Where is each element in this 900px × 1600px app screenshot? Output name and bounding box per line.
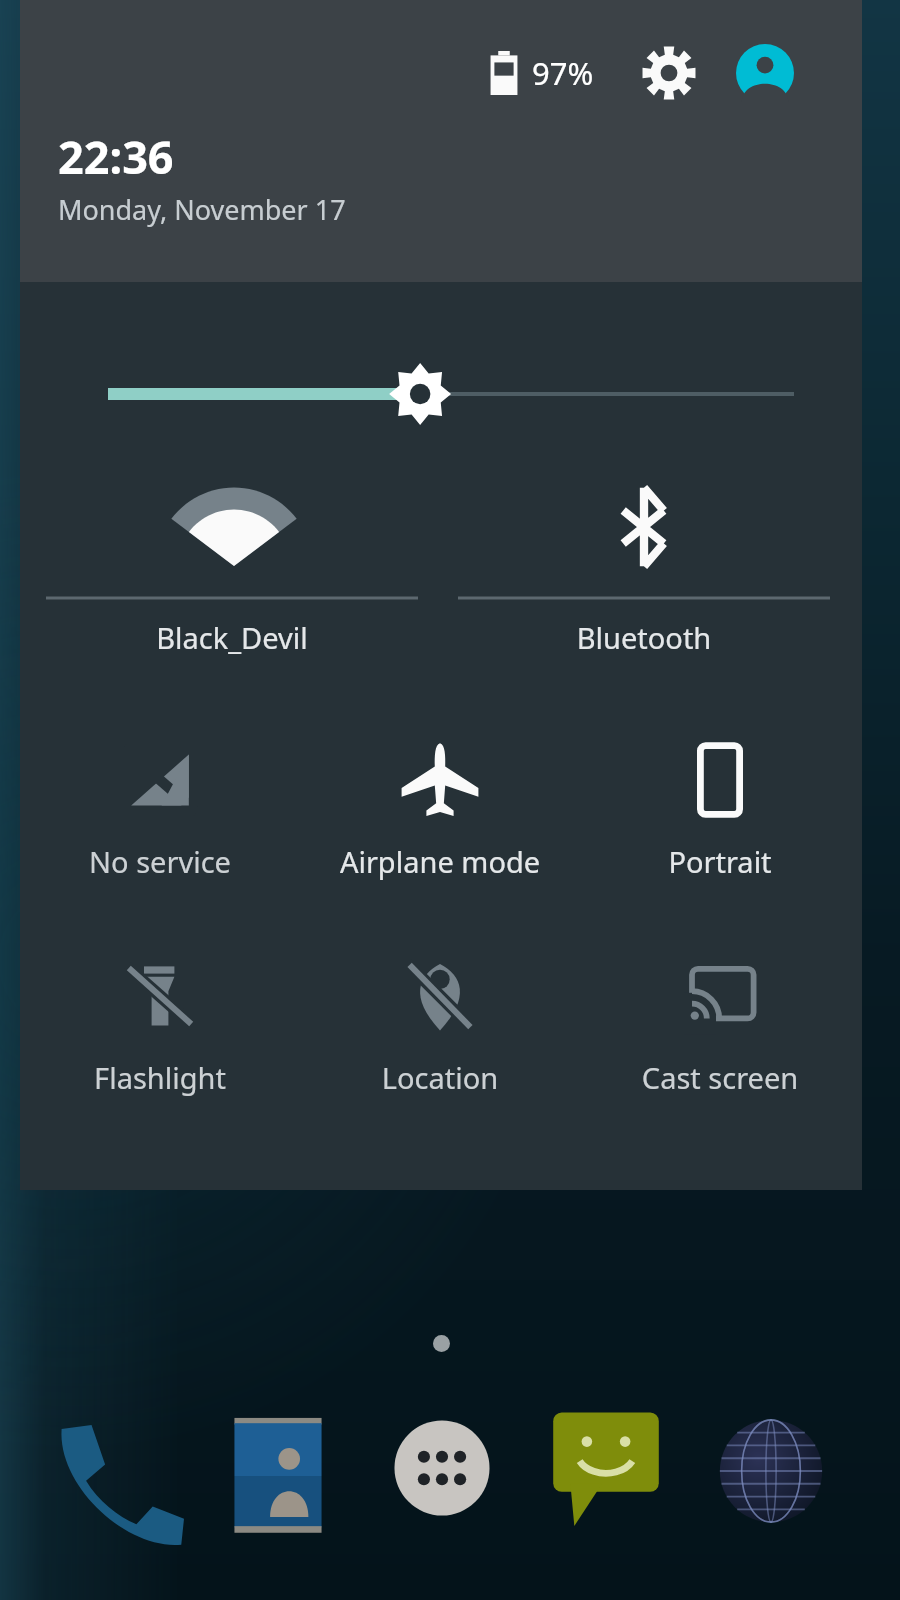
- button[interactable]: Black_Devil: [38, 470, 426, 682]
- button[interactable]: Apps: [376, 1402, 508, 1534]
- button[interactable]: Flashlight: [20, 930, 300, 1146]
- staticText: 97%: [532, 52, 594, 94]
- staticText: Portrait: [580, 842, 860, 881]
- button[interactable]: Portrait: [580, 714, 860, 930]
- button[interactable]: Location: [300, 930, 580, 1146]
- button[interactable]: Browser: [700, 1400, 842, 1542]
- staticText: 22:36: [58, 126, 174, 187]
- button[interactable]: Airplane mode: [300, 714, 580, 930]
- button[interactable]: Settings: [638, 42, 700, 104]
- staticText: Flashlight: [20, 1058, 300, 1097]
- button[interactable]: No service: [20, 714, 300, 930]
- button[interactable]: Contacts: [212, 1410, 344, 1542]
- staticText: No service: [20, 842, 300, 881]
- staticText: Location: [300, 1058, 580, 1097]
- staticText: Bluetooth: [450, 618, 838, 657]
- staticText: Black_Devil: [38, 618, 426, 657]
- button[interactable]: Phone: [48, 1410, 184, 1546]
- button[interactable]: Cast screen: [580, 930, 860, 1146]
- staticText: Airplane mode: [300, 842, 580, 881]
- button[interactable]: Messaging: [540, 1402, 672, 1534]
- button[interactable]: Bluetooth: [450, 470, 838, 682]
- button[interactable]: Brightness: [20, 342, 862, 442]
- button[interactable]: User account: [734, 42, 796, 104]
- staticText: Cast screen: [580, 1058, 860, 1097]
- staticText: Monday, November 17: [58, 191, 346, 228]
